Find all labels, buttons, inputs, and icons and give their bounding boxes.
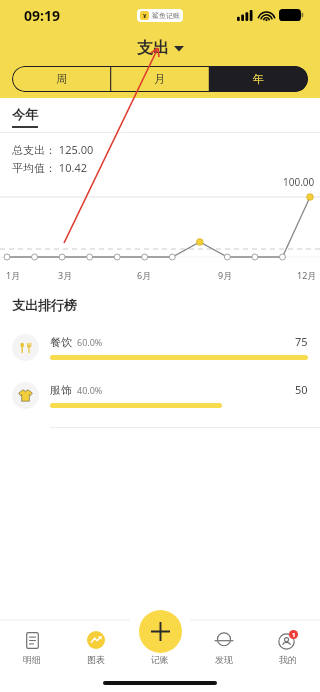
- staticText: 40.0%: [77, 384, 103, 396]
- button[interactable]: 餐饮: [0, 323, 320, 371]
- staticText: 1月: [6, 269, 21, 281]
- button[interactable]: 服饰: [0, 371, 320, 419]
- button[interactable]: 年: [209, 66, 308, 92]
- staticText: 75: [295, 334, 308, 349]
- staticText: 月: [154, 72, 165, 86]
- staticText: 平均值： 10.42: [12, 160, 87, 175]
- staticText: 记账: [151, 654, 169, 665]
- staticText: 09:19: [24, 6, 60, 25]
- button[interactable]: 1: [256, 630, 320, 692]
- staticText: 12月: [297, 269, 317, 281]
- staticText: 服饰: [50, 383, 72, 397]
- staticText: 周: [56, 72, 67, 86]
- staticText: 9月: [218, 269, 233, 281]
- staticText: 年: [253, 72, 264, 86]
- staticText: 支出排行榜: [12, 297, 77, 313]
- staticText: 60.0%: [77, 336, 103, 348]
- button[interactable]: 支出: [131, 36, 190, 60]
- button[interactable]: 图表: [64, 630, 128, 692]
- staticText: 6月: [137, 269, 152, 281]
- button[interactable]: 明细: [0, 630, 64, 692]
- staticText: 餐饮: [50, 335, 72, 349]
- button[interactable]: Add transaction: [139, 610, 182, 653]
- staticText: 今年: [12, 106, 38, 122]
- button[interactable]: 月: [110, 66, 209, 92]
- staticText: ¥: [143, 12, 147, 20]
- staticText: 总支出： 125.00: [12, 142, 94, 157]
- staticText: 支出: [137, 38, 169, 58]
- staticText: 50: [295, 382, 308, 397]
- button[interactable]: 周: [12, 66, 110, 92]
- staticText: 100.00: [283, 175, 315, 189]
- button[interactable]: 记账: [128, 630, 192, 692]
- staticText: 明细: [23, 654, 41, 665]
- staticText: 3月: [58, 269, 73, 281]
- staticText: 发现: [215, 654, 233, 665]
- staticText: 1: [292, 631, 296, 639]
- button[interactable]: 发现: [192, 630, 256, 692]
- staticText: 图表: [87, 654, 105, 665]
- staticText: 我的: [279, 654, 297, 665]
- staticText: 鲨鱼记账: [152, 11, 180, 20]
